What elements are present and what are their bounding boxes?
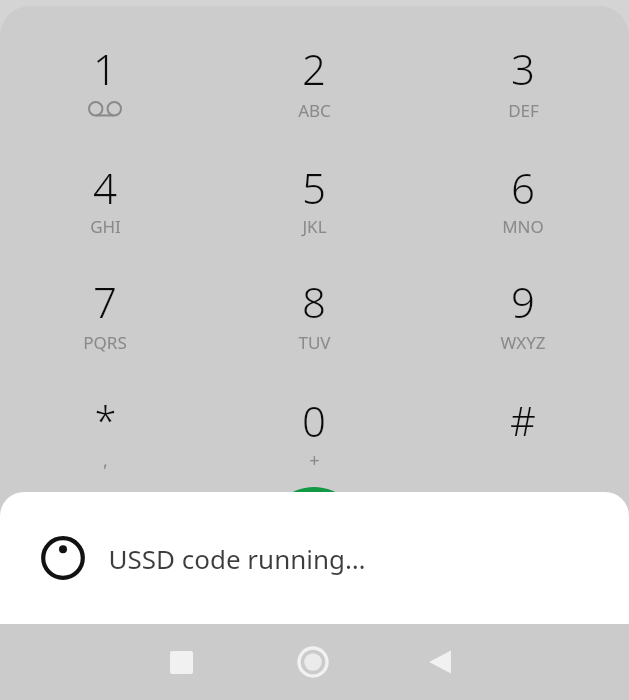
staticText: USSD code running… [108,541,366,576]
staticText: 6 [511,159,535,215]
button[interactable] [248,141,380,245]
staticText: TUV [298,331,331,354]
button[interactable]: Running [0,492,629,624]
staticText: 0 [302,392,326,448]
staticText: 5 [302,159,326,215]
staticText: DEF [508,99,539,122]
button[interactable] [248,255,380,359]
staticText: # [510,393,536,447]
staticText: 8 [302,273,326,329]
staticText: 1 [93,40,117,96]
button[interactable] [457,255,589,359]
button[interactable] [457,374,589,478]
button[interactable]: Call [267,487,361,581]
button[interactable] [39,141,171,245]
button[interactable] [39,374,171,478]
button[interactable]: Home [288,637,338,687]
button[interactable] [39,22,171,126]
button[interactable] [457,22,589,126]
button[interactable] [248,374,380,478]
button[interactable] [39,255,171,359]
staticText: MNO [502,215,544,238]
staticText: 7 [93,273,117,329]
staticText: PQRS [83,331,127,354]
staticText: JKL [302,215,327,238]
staticText: WXYZ [500,331,546,354]
staticText: ABC [298,99,331,122]
staticText: 2 [302,40,326,96]
staticText: , [103,448,108,473]
staticText: GHI [90,215,121,238]
other: Running [40,535,86,581]
staticText: 4 [93,159,117,215]
button[interactable]: Back [415,637,465,687]
staticText: 3 [511,40,535,96]
button[interactable] [457,141,589,245]
staticText: 9 [511,273,535,329]
staticText: + [309,448,320,473]
button[interactable]: Recents [156,637,206,687]
button[interactable] [248,22,380,126]
staticText: * [94,393,117,447]
